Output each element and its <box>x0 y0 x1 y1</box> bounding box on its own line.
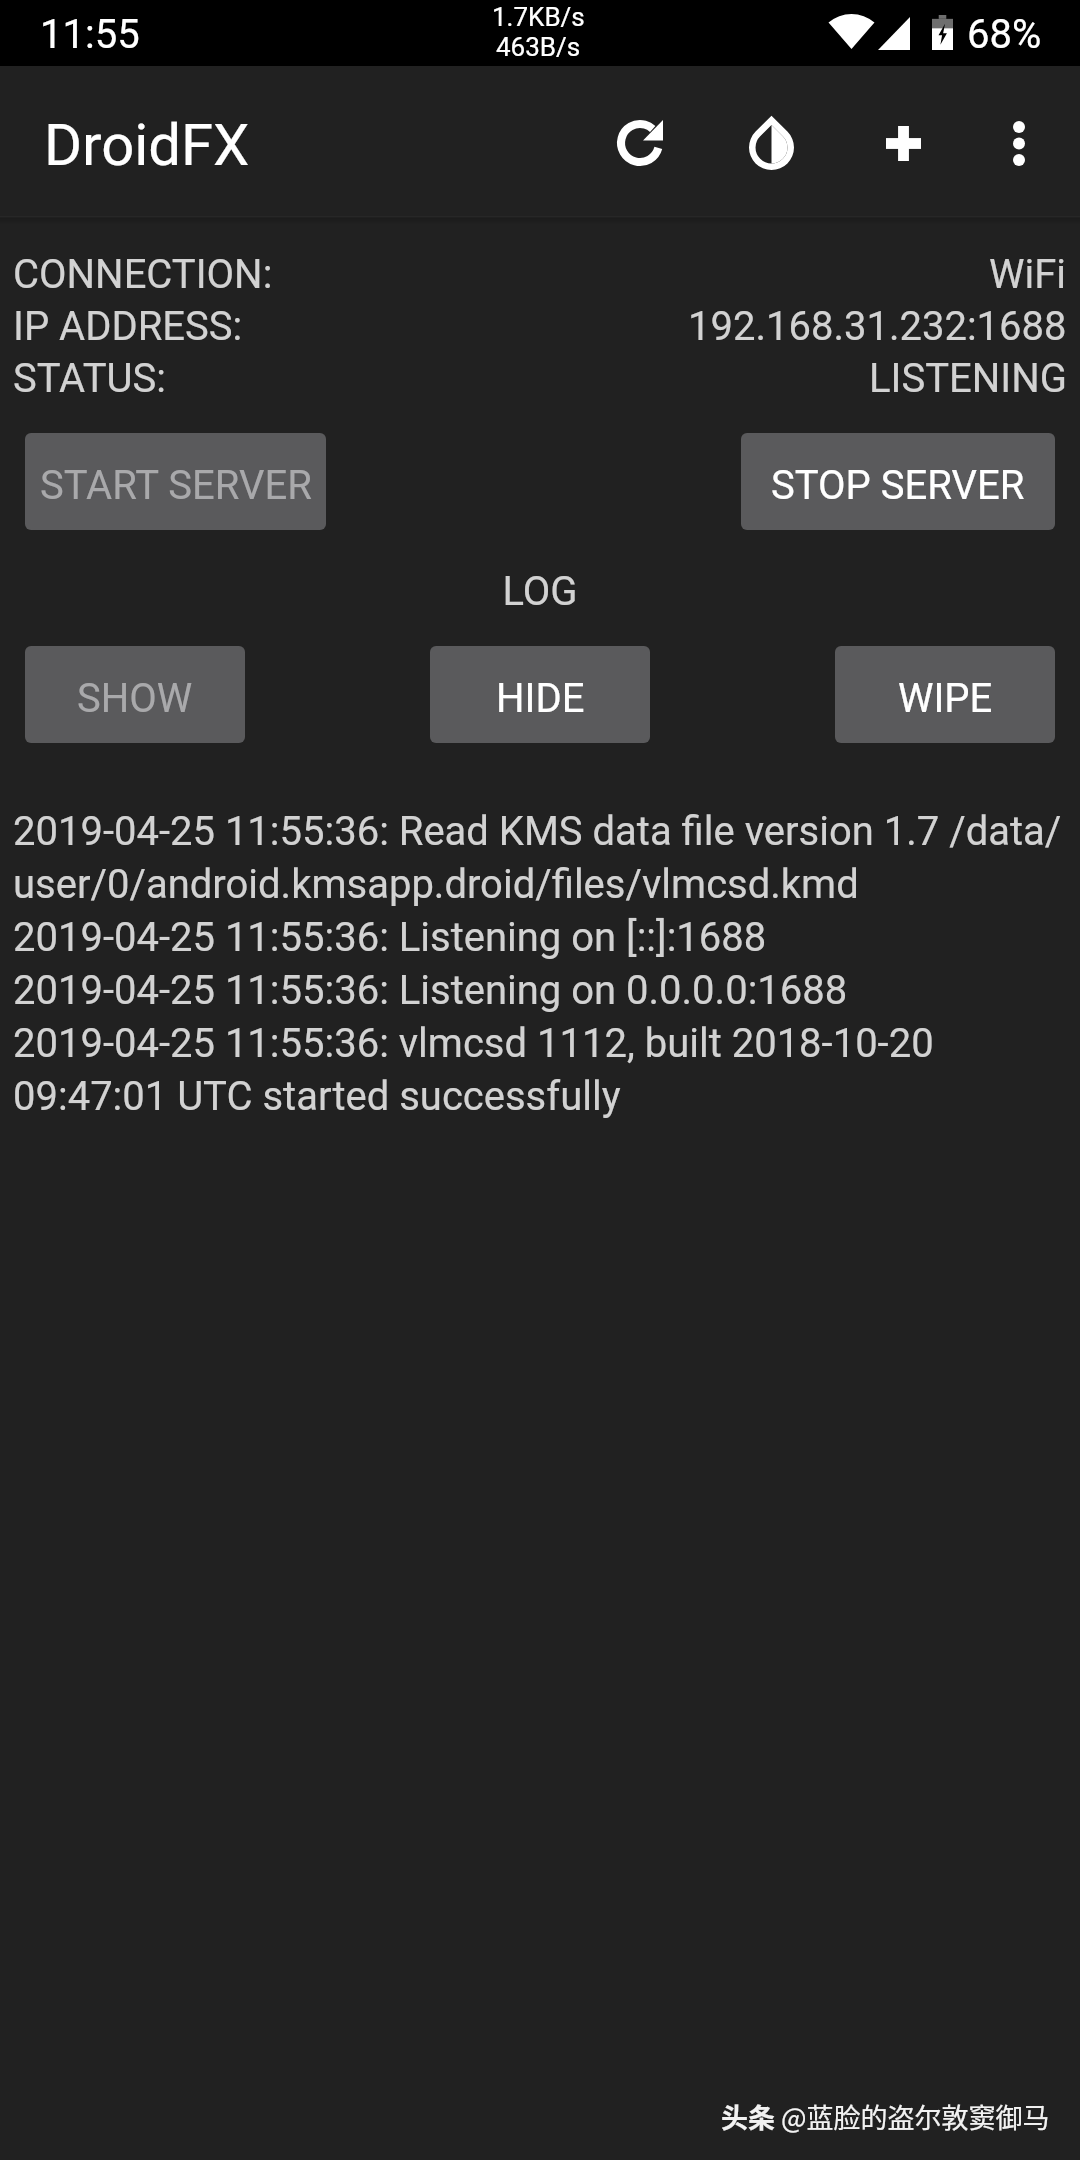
staticText: LISTENING <box>869 355 1067 402</box>
staticText: 2019-04-25 11:55:36: Read KMS data file … <box>13 808 1066 1120</box>
button[interactable]: SHOW <box>25 646 245 743</box>
button[interactable]: Invert colours <box>715 87 827 199</box>
staticText: STOP SERVER <box>771 462 1025 509</box>
button[interactable]: More options <box>963 87 1075 199</box>
button[interactable]: HIDE <box>430 646 650 743</box>
staticText: IP ADDRESS: <box>13 303 243 350</box>
staticText: 68% <box>967 11 1042 58</box>
staticText: 头条 <box>721 2097 775 2136</box>
button[interactable]: Add <box>847 87 959 199</box>
staticText: LOG <box>0 568 1080 615</box>
staticText: 1.7KB/s <box>492 2 585 32</box>
button[interactable]: STOP SERVER <box>741 433 1055 530</box>
button[interactable]: Refresh <box>584 87 696 199</box>
staticText: CONNECTION: <box>13 251 273 298</box>
staticText: 192.168.31.232:1688 <box>688 303 1067 350</box>
staticText: 463B/s <box>496 32 581 62</box>
staticText: STATUS: <box>13 355 166 402</box>
staticText: SHOW <box>77 675 193 722</box>
staticText: WIPE <box>898 675 993 722</box>
staticText: DroidFX <box>44 111 250 179</box>
staticText: @蓝脸的盗尔敦窦御马 <box>775 2097 1050 2136</box>
button[interactable]: WIPE <box>835 646 1055 743</box>
button[interactable]: START SERVER <box>25 433 326 530</box>
staticText: 11:55 <box>40 11 140 58</box>
staticText: WiFi <box>989 251 1067 298</box>
staticText: HIDE <box>496 675 585 722</box>
staticText: START SERVER <box>40 462 312 509</box>
